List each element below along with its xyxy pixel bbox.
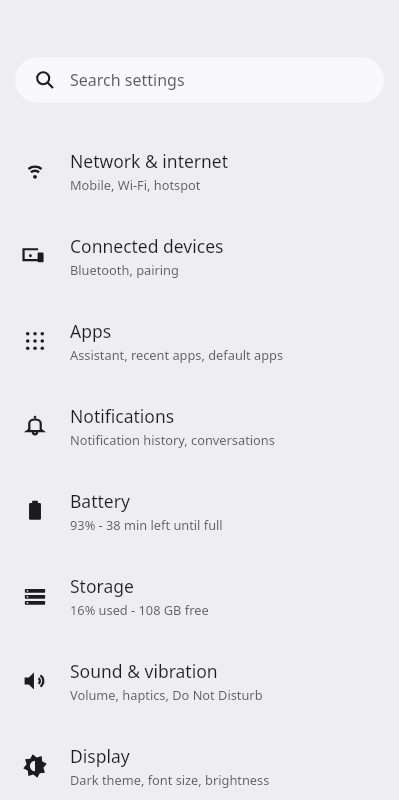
- button[interactable]: Search settings: [15, 57, 384, 103]
- staticText: 16% used - 108 GB free: [70, 601, 209, 618]
- staticText: Apps: [70, 319, 112, 343]
- staticText: Notifications: [70, 404, 175, 428]
- button[interactable]: Notifications: [0, 391, 399, 461]
- staticText: 93% - 38 min left until full: [70, 516, 223, 533]
- staticText: Network & internet: [70, 149, 229, 173]
- button[interactable]: Sound & vibration: [0, 646, 399, 716]
- staticText: Display: [70, 744, 130, 768]
- button[interactable]: Display: [0, 731, 399, 800]
- staticText: Search settings: [70, 69, 185, 91]
- button[interactable]: Connected devices: [0, 221, 399, 291]
- staticText: Volume, haptics, Do Not Disturb: [70, 686, 263, 703]
- staticText: Bluetooth, pairing: [70, 261, 179, 278]
- button[interactable]: Apps: [0, 306, 399, 376]
- staticText: Notification history, conversations: [70, 431, 275, 448]
- button[interactable]: Storage: [0, 561, 399, 631]
- staticText: Connected devices: [70, 234, 224, 258]
- button[interactable]: Battery: [0, 476, 399, 546]
- staticText: Dark theme, font size, brightness: [70, 771, 270, 788]
- button[interactable]: Network & internet: [0, 136, 399, 206]
- staticText: Mobile, Wi-Fi, hotspot: [70, 176, 201, 193]
- staticText: Sound & vibration: [70, 659, 218, 683]
- staticText: Storage: [70, 574, 134, 598]
- staticText: Battery: [70, 489, 130, 513]
- staticText: Assistant, recent apps, default apps: [70, 346, 284, 363]
